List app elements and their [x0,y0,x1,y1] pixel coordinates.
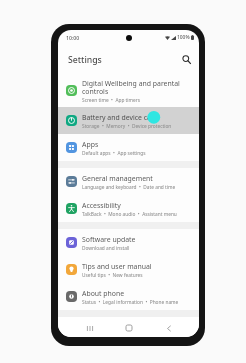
staticText: Download and install [82,245,130,252]
staticText: Battery and device care [82,113,158,122]
button[interactable]: Battery and device care [58,107,199,134]
staticText: Software update [82,235,136,244]
staticText: Default apps • App settings [82,150,146,157]
button[interactable]: Home [105,317,152,337]
staticText: Language and keyboard • Date and time [82,184,176,191]
button[interactable]: Apps [58,134,199,161]
button[interactable]: Software update [58,229,199,256]
button[interactable]: Tips and user manual [58,256,199,283]
staticText: Apps [82,140,99,149]
staticText: About phone [82,289,125,298]
staticText: TalkBack • Mono audio • Assistant menu [82,211,177,218]
staticText: Storage • Memory • Device protection [82,123,172,130]
button[interactable]: About phone [58,283,199,310]
staticText: Useful tips • New features [82,272,143,279]
staticText: Accessibility [82,201,121,210]
button[interactable]: Recents [66,317,113,337]
button[interactable]: Accessibility [58,195,199,222]
button[interactable]: Search [180,53,193,66]
staticText: Status • Legal information • Phone name [82,299,179,306]
staticText: 10:00 [66,34,80,41]
staticText: Digital Wellbeing and parental controls [82,79,180,96]
staticText: 100% [177,34,190,41]
staticText: Tips and user manual [82,262,152,271]
staticText: General management [82,174,153,183]
staticText: Settings [68,54,102,66]
button[interactable]: Digital Wellbeing and parental controls [58,73,199,107]
button[interactable]: Back [145,317,192,337]
staticText: Screen time • App timers [82,97,141,104]
button[interactable]: General management [58,168,199,195]
